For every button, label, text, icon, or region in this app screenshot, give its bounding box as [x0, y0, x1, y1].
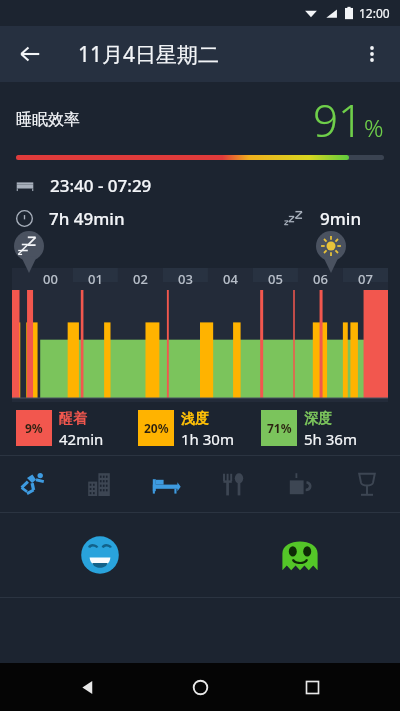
staticText: 7h 49min	[49, 207, 125, 230]
button[interactable]: Food	[199, 456, 266, 512]
staticText: 01	[88, 270, 103, 288]
staticText: 04	[223, 270, 238, 288]
button[interactable]: 71%	[261, 410, 384, 449]
staticText: 05	[268, 270, 283, 288]
button[interactable]: Recents	[288, 663, 336, 711]
staticText: 9min	[320, 207, 362, 230]
button[interactable]: Mood happy	[0, 513, 200, 597]
staticText: 00	[43, 270, 58, 288]
button[interactable]: More options	[350, 32, 394, 76]
staticText: 浅度	[181, 410, 209, 428]
button[interactable]: Exercise	[0, 456, 66, 512]
staticText: 02	[133, 270, 148, 288]
button[interactable]: Work	[66, 456, 132, 512]
staticText: 12:00	[359, 5, 390, 21]
button[interactable]: Home	[176, 663, 224, 711]
staticText: 20%	[144, 420, 169, 436]
staticText: 醒着	[59, 410, 87, 428]
staticText: 深度	[304, 410, 332, 428]
staticText: 睡眠效率	[16, 110, 80, 130]
button[interactable]: Back	[64, 663, 112, 711]
button[interactable]: Coffee	[266, 456, 333, 512]
staticText: 07	[358, 270, 373, 288]
staticText: 23:40 - 07:29	[50, 174, 152, 197]
button[interactable]: Back	[8, 32, 52, 76]
button[interactable]: Alcohol	[333, 456, 400, 512]
staticText: 11月4日星期二	[78, 40, 220, 69]
staticText: 5h 36m	[304, 429, 357, 449]
staticText: 9%	[25, 420, 43, 436]
button[interactable]: 20%	[138, 410, 261, 449]
staticText: 71%	[267, 420, 292, 436]
staticText: 42min	[59, 429, 104, 449]
button[interactable]: Bed	[132, 456, 199, 512]
button[interactable]: Ghost	[200, 513, 400, 597]
staticText: %	[364, 111, 384, 144]
button[interactable]: 9%	[16, 410, 138, 449]
staticText: 03	[178, 270, 193, 288]
staticText: 06	[313, 270, 328, 288]
staticText: 91	[313, 90, 364, 150]
staticText: 1h 30m	[181, 429, 234, 449]
